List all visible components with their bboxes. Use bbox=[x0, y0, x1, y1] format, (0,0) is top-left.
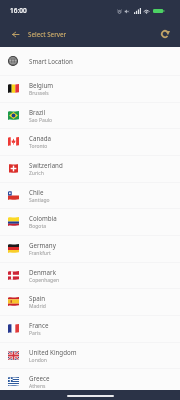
staticText: Select Server bbox=[28, 30, 67, 38]
button[interactable]: Greece bbox=[0, 368, 180, 395]
staticText: United Kingdom bbox=[29, 348, 77, 356]
staticText: Greece bbox=[29, 374, 50, 382]
staticText: Sao Paulo bbox=[29, 117, 53, 124]
button[interactable]: United Kingdom bbox=[0, 342, 180, 369]
staticText: Denmark bbox=[29, 268, 56, 276]
staticText: Canada bbox=[29, 134, 51, 142]
staticText: Frankfurt bbox=[29, 250, 51, 257]
staticText: Paris bbox=[29, 330, 41, 337]
button[interactable]: France bbox=[0, 315, 180, 342]
button[interactable]: Brazil bbox=[0, 102, 180, 129]
staticText: France bbox=[29, 321, 49, 329]
staticText: Spain bbox=[29, 294, 46, 302]
staticText: Brussels bbox=[29, 90, 49, 97]
staticText: Belgium bbox=[29, 81, 54, 89]
button[interactable]: Chile bbox=[0, 182, 180, 209]
button[interactable]: Switzerland bbox=[0, 155, 180, 182]
staticText: Bogota bbox=[29, 223, 46, 230]
button[interactable]: Spain bbox=[0, 288, 180, 315]
staticText: Santiago bbox=[29, 197, 50, 204]
staticText: Toronto bbox=[29, 143, 48, 150]
staticText: 16:00 bbox=[10, 6, 27, 15]
button[interactable]: Belgium bbox=[0, 75, 180, 102]
button[interactable]: Smart Location bbox=[0, 47, 180, 75]
button[interactable]: Refresh bbox=[154, 23, 176, 45]
staticText: Copenhagen bbox=[29, 277, 60, 284]
staticText: Chile bbox=[29, 188, 44, 196]
button[interactable]: Denmark bbox=[0, 262, 180, 289]
button[interactable]: Colombia bbox=[0, 208, 180, 235]
staticText: Zurich bbox=[29, 170, 44, 177]
button[interactable]: Canada bbox=[0, 128, 180, 155]
staticText: Germany bbox=[29, 241, 56, 249]
staticText: Athens bbox=[29, 383, 46, 390]
staticText: Madrid bbox=[29, 303, 46, 310]
staticText: Smart Location bbox=[29, 57, 73, 65]
staticText: London bbox=[29, 357, 47, 364]
button[interactable]: Germany bbox=[0, 235, 180, 262]
staticText: Brazil bbox=[29, 108, 46, 116]
staticText: Switzerland bbox=[29, 161, 63, 169]
staticText: Colombia bbox=[29, 214, 57, 222]
button[interactable]: Back bbox=[4, 23, 26, 45]
